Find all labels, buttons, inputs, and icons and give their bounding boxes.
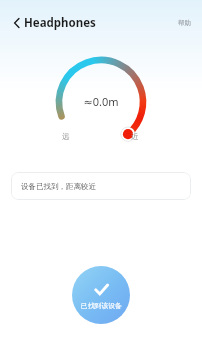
staticText: 近 [131, 132, 139, 141]
staticText: 设备已找到，距离较近 [21, 182, 96, 191]
staticText: ≈0.0m [83, 94, 119, 109]
staticText: 已找到该设备 [81, 301, 122, 310]
staticText: Headphones [24, 15, 96, 31]
button[interactable]: 设备已找到，距离较近 [11, 172, 191, 200]
button[interactable]: Back [5, 11, 29, 35]
staticText: 帮助 [178, 19, 191, 27]
button[interactable]: 帮助 [175, 16, 194, 30]
button[interactable]: 已找到该设备 [72, 266, 130, 324]
staticText: 远 [62, 132, 70, 141]
